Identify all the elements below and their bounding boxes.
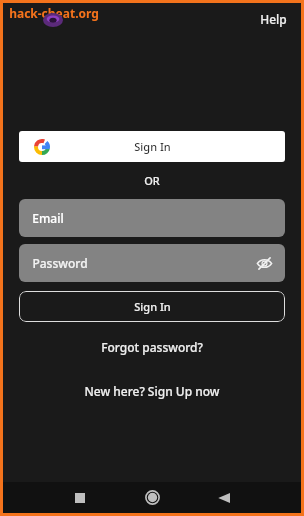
button[interactable]: Show password	[253, 252, 276, 275]
button[interactable]: Email	[19, 199, 285, 237]
staticText: Password	[32, 255, 88, 271]
button[interactable]: Password	[19, 244, 285, 282]
button[interactable]: Forgot password?	[93, 336, 211, 358]
staticText: Email	[32, 210, 64, 226]
staticText: Sign In	[134, 139, 171, 154]
button[interactable]: Recent apps	[44, 482, 116, 513]
button[interactable]: New here? Sign Up now	[76, 380, 228, 402]
button[interactable]: Sign In	[19, 131, 285, 162]
button[interactable]: Help	[254, 9, 293, 29]
staticText: OR	[144, 173, 160, 188]
staticText: Forgot password?	[101, 339, 203, 355]
staticText: Sign In	[134, 299, 171, 314]
button[interactable]: Back	[188, 482, 260, 513]
button[interactable]: Sign In	[19, 291, 285, 322]
staticText: New here? Sign Up now	[84, 383, 220, 399]
staticText: Help	[260, 11, 287, 27]
staticText: hack-cheat.org	[9, 5, 99, 21]
button[interactable]: Home	[116, 482, 188, 513]
